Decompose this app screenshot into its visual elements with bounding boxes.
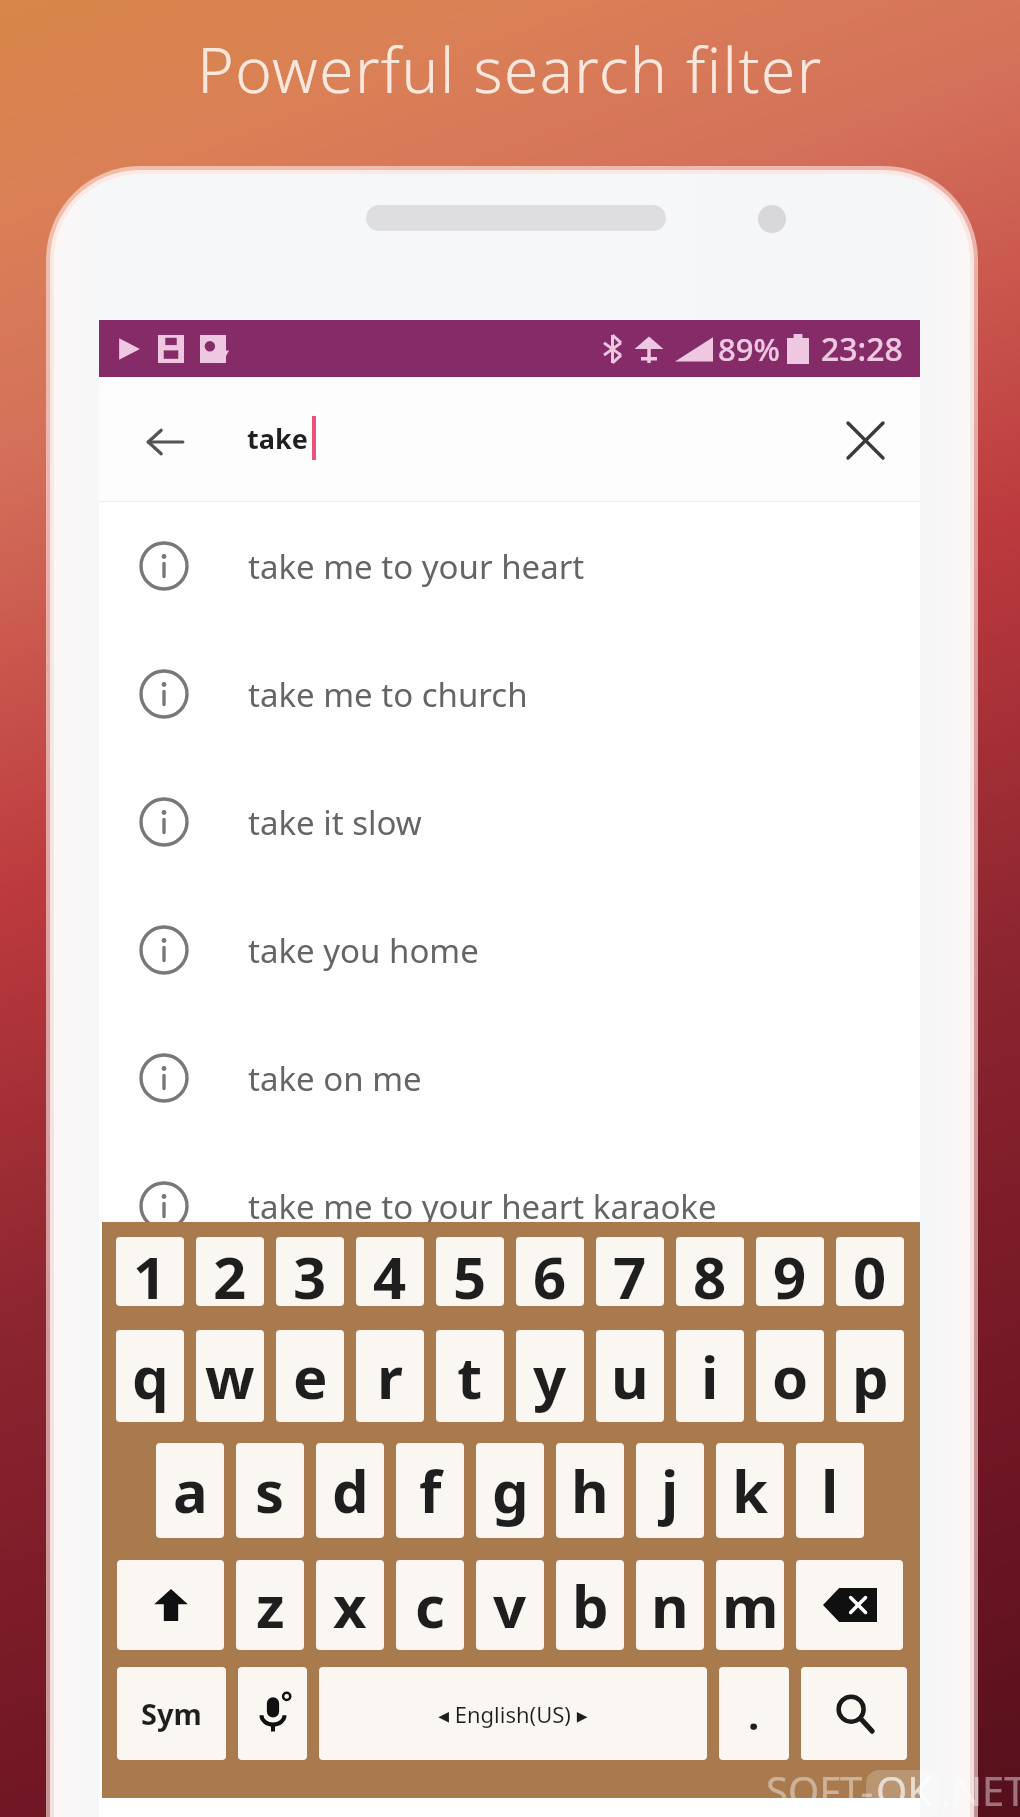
staticText: k	[732, 1451, 768, 1530]
staticText: 8	[693, 1237, 727, 1306]
staticText: OK	[876, 1763, 932, 1815]
staticText: take me to church	[248, 672, 528, 717]
button[interactable]: take on me	[99, 1014, 920, 1142]
button[interactable]: t	[436, 1330, 504, 1422]
button[interactable]: Backspace	[796, 1560, 903, 1650]
button[interactable]: 4	[356, 1237, 424, 1306]
staticText: h	[571, 1451, 609, 1530]
staticText: j	[661, 1451, 679, 1530]
button[interactable]: u	[596, 1330, 664, 1422]
button[interactable]: 6	[516, 1237, 584, 1306]
button[interactable]: e	[276, 1330, 344, 1422]
staticText: take you home	[248, 928, 479, 973]
button[interactable]: c	[396, 1560, 464, 1650]
staticText: z	[256, 1566, 285, 1645]
button[interactable]: Sym	[117, 1667, 226, 1760]
staticText: .	[748, 1687, 760, 1741]
button[interactable]: .	[719, 1667, 789, 1760]
staticText: take me to your heart karaoke	[248, 1184, 717, 1229]
staticText: 23:28	[821, 327, 903, 371]
staticText: Powerful search filter	[197, 27, 823, 111]
staticText: ◂ English(US) ▸	[438, 1699, 588, 1729]
button[interactable]: b	[556, 1560, 624, 1650]
button[interactable]: take me to your heart	[99, 502, 920, 630]
button[interactable]: i	[676, 1330, 744, 1422]
button[interactable]: v	[476, 1560, 544, 1650]
button[interactable]: take it slow	[99, 758, 920, 886]
staticText: c	[415, 1566, 445, 1645]
button[interactable]: j	[636, 1443, 704, 1538]
button[interactable]: Shift	[117, 1560, 224, 1650]
staticText: b	[572, 1566, 609, 1645]
button[interactable]: h	[556, 1443, 624, 1538]
button[interactable]: take you home	[99, 886, 920, 1014]
button[interactable]: 0	[836, 1237, 904, 1306]
button[interactable]: 2	[196, 1237, 264, 1306]
button[interactable]: l	[796, 1443, 864, 1538]
button[interactable]: f	[396, 1443, 464, 1538]
staticText: take	[247, 420, 308, 457]
staticText: 0	[853, 1237, 887, 1306]
button[interactable]: 5	[436, 1237, 504, 1306]
button[interactable]: 8	[676, 1237, 744, 1306]
staticText: u	[611, 1337, 649, 1416]
button[interactable]: take me to church	[99, 630, 920, 758]
staticText: d	[332, 1451, 369, 1530]
button[interactable]: p	[836, 1330, 904, 1422]
staticText: o	[772, 1337, 809, 1416]
button[interactable]: w	[196, 1330, 264, 1422]
button[interactable]: d	[316, 1443, 384, 1538]
staticText: l	[821, 1451, 839, 1530]
button[interactable]: m	[716, 1560, 784, 1650]
staticText: 89%	[718, 328, 780, 370]
staticText: 2	[213, 1237, 247, 1306]
button[interactable]: ◂ English(US) ▸	[319, 1667, 707, 1760]
staticText: r	[377, 1337, 403, 1416]
staticText: take on me	[248, 1056, 422, 1101]
staticText: p	[852, 1337, 889, 1416]
button[interactable]: 7	[596, 1237, 664, 1306]
staticText: q	[132, 1337, 169, 1416]
button[interactable]: a	[156, 1443, 224, 1538]
staticText: 7	[613, 1237, 647, 1306]
staticText: Sym	[141, 1694, 202, 1733]
staticText: v	[493, 1566, 527, 1645]
staticText: 4	[373, 1237, 407, 1306]
staticText: g	[492, 1451, 529, 1530]
button[interactable]: Search	[801, 1667, 907, 1760]
staticText: e	[293, 1337, 328, 1416]
button[interactable]: Back	[137, 414, 193, 470]
staticText: .NET	[941, 1763, 1020, 1815]
staticText: i	[701, 1337, 719, 1416]
staticText: x	[333, 1566, 367, 1645]
button[interactable]: n	[636, 1560, 704, 1650]
button[interactable]: q	[116, 1330, 184, 1422]
button[interactable]: take me to your heart karaoke	[99, 1142, 920, 1270]
staticText: 9	[773, 1237, 807, 1306]
button[interactable]: o	[756, 1330, 824, 1422]
button[interactable]: r	[356, 1330, 424, 1422]
staticText: SOFT-	[766, 1763, 874, 1815]
button[interactable]: k	[716, 1443, 784, 1538]
button[interactable]: x	[316, 1560, 384, 1650]
staticText: w	[205, 1337, 255, 1416]
staticText: t	[457, 1337, 483, 1416]
staticText: s	[255, 1451, 285, 1530]
button[interactable]: y	[516, 1330, 584, 1422]
staticText: y	[533, 1337, 567, 1416]
staticText: take me to your heart	[248, 544, 585, 589]
staticText: n	[651, 1566, 689, 1645]
button[interactable]: Clear search	[838, 413, 892, 467]
staticText: m	[722, 1566, 779, 1645]
button[interactable]: g	[476, 1443, 544, 1538]
button[interactable]: s	[236, 1443, 304, 1538]
button[interactable]: 3	[276, 1237, 344, 1306]
button[interactable]: 9	[756, 1237, 824, 1306]
button[interactable]: Voice input	[238, 1667, 307, 1760]
staticText: 3	[293, 1237, 327, 1306]
button[interactable]: 1	[116, 1237, 184, 1306]
staticText: 5	[453, 1237, 487, 1306]
staticText: 6	[533, 1237, 567, 1306]
button[interactable]: z	[236, 1560, 304, 1650]
staticText: f	[419, 1451, 442, 1530]
